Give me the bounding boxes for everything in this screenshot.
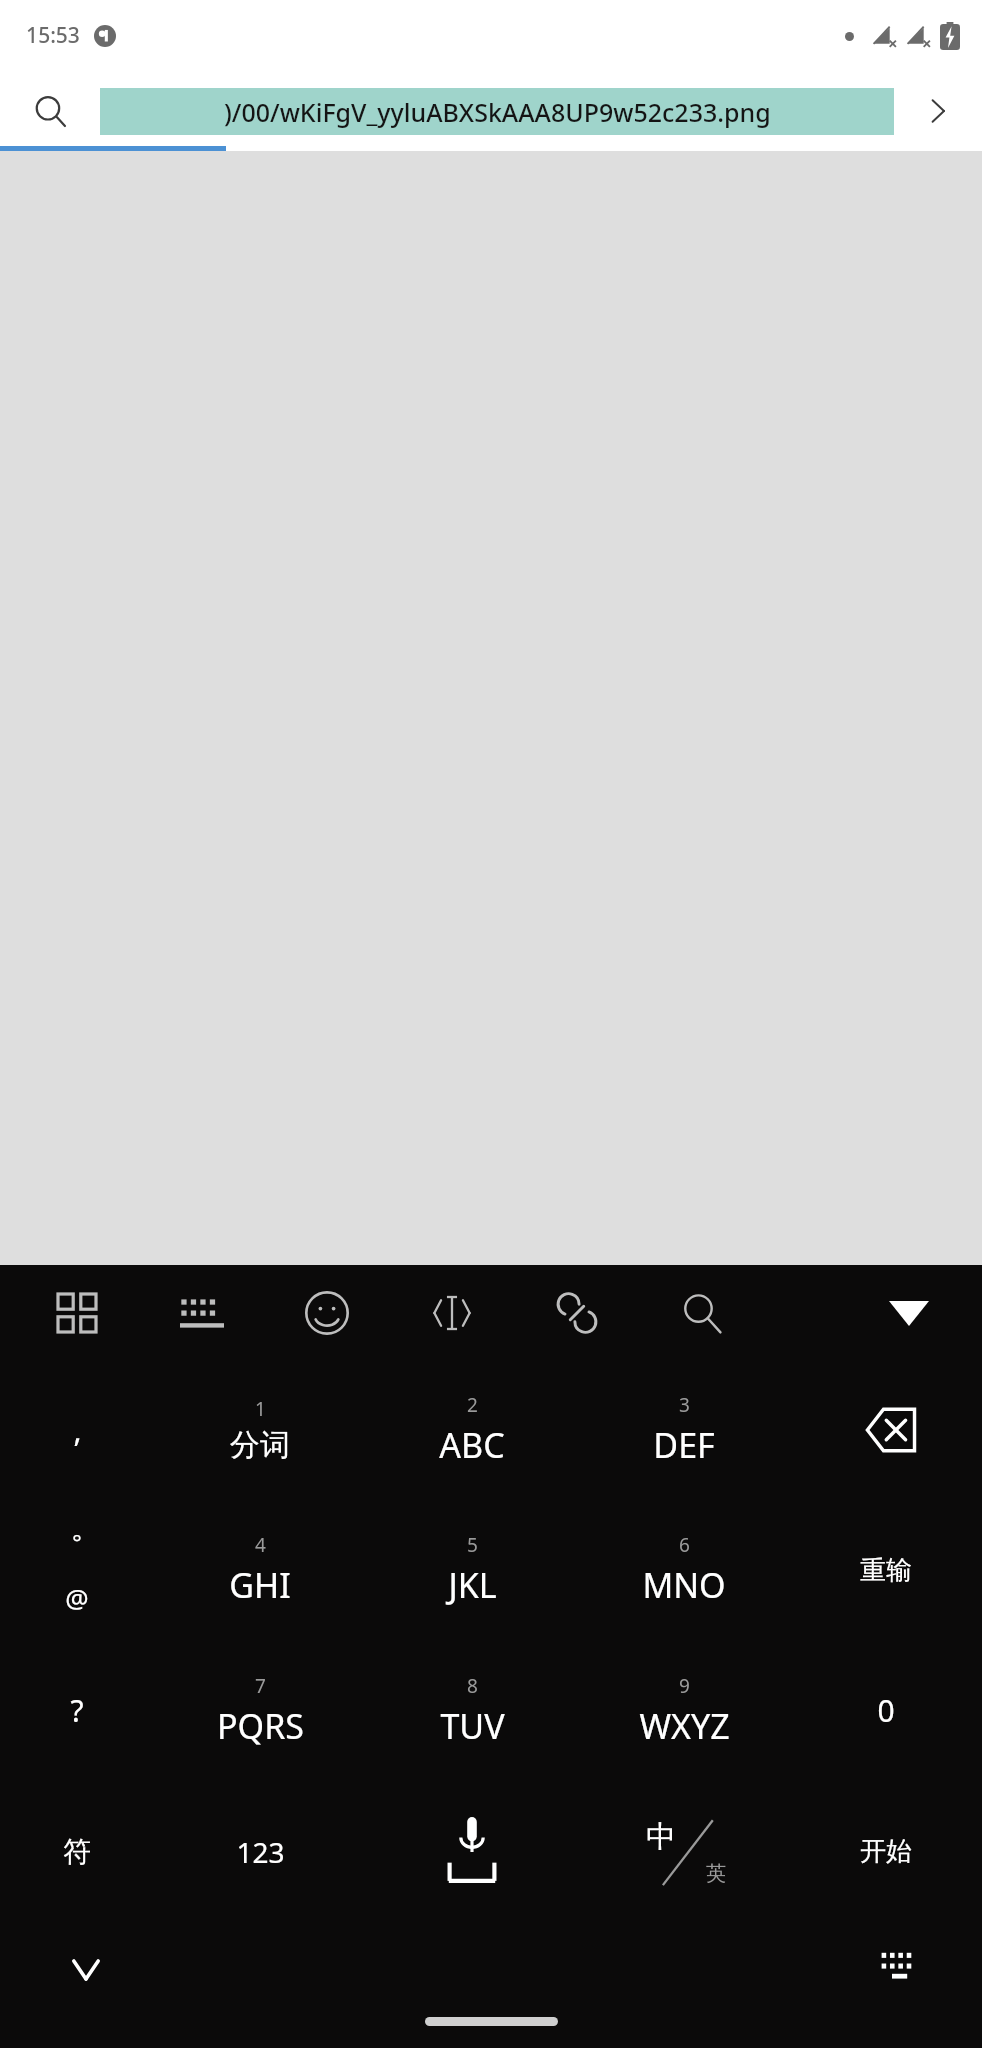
button[interactable]: Switch Chinese English (578, 1781, 790, 1922)
button[interactable]: Emoji (264, 1265, 389, 1360)
button[interactable]: Go (894, 71, 982, 151)
button[interactable]: 7 (154, 1640, 366, 1781)
button[interactable]: Collapse toolbar (876, 1280, 942, 1346)
staticText: DEF (653, 1422, 715, 1468)
button[interactable]: Link (514, 1265, 639, 1360)
button[interactable]: 0 (790, 1640, 982, 1781)
button[interactable]: 8 (366, 1640, 578, 1781)
button[interactable]: Search (639, 1265, 764, 1360)
staticText: 5 (467, 1532, 478, 1558)
button[interactable]: , (0, 1360, 154, 1500)
staticText: 6 (679, 1532, 690, 1558)
staticText: @ (65, 1580, 89, 1615)
staticText: 4 (255, 1532, 266, 1558)
button[interactable]: Voice input, space (366, 1781, 578, 1922)
button[interactable]: 开始 (790, 1781, 982, 1922)
button[interactable]: 符 (0, 1781, 154, 1922)
button[interactable]: )/00/wKiFgV_yyluABXSkAAA8UP9w52c233.png (100, 71, 894, 151)
button[interactable]: 1 (154, 1360, 366, 1500)
staticText: 符 (63, 1834, 91, 1869)
button[interactable]: ° (0, 1500, 154, 1640)
staticText: )/00/wKiFgV_yyluABXSkAAA8UP9w52c233.png (224, 95, 771, 129)
button[interactable]: 6 (578, 1500, 790, 1640)
staticText: 开始 (860, 1835, 912, 1868)
staticText: MNO (642, 1562, 726, 1608)
staticText: TUV (440, 1703, 505, 1749)
staticText: JKL (448, 1562, 497, 1608)
button[interactable]: 重输 (790, 1500, 982, 1640)
staticText: 中 (646, 1818, 676, 1856)
button[interactable]: Search (0, 71, 100, 151)
staticText: 0 (877, 1690, 895, 1731)
staticText: ? (70, 1690, 84, 1731)
button[interactable]: 4 (154, 1500, 366, 1640)
button[interactable]: Keyboard layout (139, 1265, 264, 1360)
staticText: GHI (229, 1562, 291, 1608)
staticText: 英 (706, 1861, 726, 1886)
staticText: 7 (255, 1673, 266, 1699)
button[interactable]: 123 (154, 1781, 366, 1922)
staticText: PQRS (217, 1703, 304, 1749)
button[interactable]: Switch input method (868, 1934, 932, 1998)
button[interactable]: 9 (578, 1640, 790, 1781)
staticText: ° (72, 1526, 82, 1556)
staticText: 9 (679, 1673, 690, 1699)
button[interactable]: Cursor control (389, 1265, 514, 1360)
button[interactable]: Backspace (790, 1360, 982, 1500)
staticText: ABC (439, 1422, 505, 1468)
staticText: WXYZ (639, 1703, 730, 1749)
staticText: 15:53 (26, 21, 80, 50)
staticText: 123 (236, 1833, 285, 1871)
button[interactable]: 3 (578, 1360, 790, 1500)
button[interactable]: Hide keyboard (54, 1938, 118, 2002)
staticText: 分词 (230, 1426, 290, 1464)
button[interactable]: 5 (366, 1500, 578, 1640)
staticText: 2 (467, 1392, 478, 1418)
staticText: , (73, 1410, 82, 1451)
staticText: 1 (255, 1396, 266, 1422)
staticText: 3 (679, 1392, 690, 1418)
button[interactable]: ? (0, 1640, 154, 1781)
staticText: 8 (467, 1673, 478, 1699)
button[interactable]: Clipboard (14, 1265, 139, 1360)
staticText: 重输 (860, 1554, 912, 1587)
button[interactable]: 2 (366, 1360, 578, 1500)
